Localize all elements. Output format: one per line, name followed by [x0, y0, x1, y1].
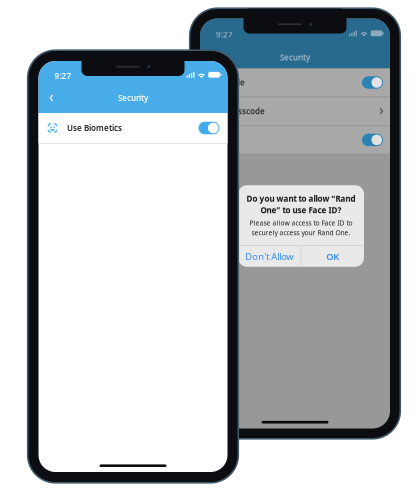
button[interactable]: Use Biometics — [38, 113, 227, 143]
staticText: Face ID — [208, 135, 237, 145]
button[interactable]: Don't Allow — [238, 246, 301, 267]
staticText: OK — [326, 250, 339, 262]
staticText: Use Biometics — [67, 123, 122, 133]
staticText: New Passcode — [208, 106, 265, 116]
staticText: Do you want to allow “Rand — [246, 193, 355, 204]
staticText: Security — [118, 93, 148, 103]
staticText: Security — [280, 52, 310, 63]
staticText: One” to use Face ID? — [260, 205, 341, 215]
staticText: Don't Allow — [245, 250, 293, 262]
staticText: securely access your Rand One. — [251, 228, 350, 237]
button[interactable]: OK — [301, 246, 364, 267]
staticText: 9:27 — [54, 71, 71, 81]
staticText: 9:27 — [216, 29, 233, 40]
staticText: Passcode — [208, 77, 245, 88]
button[interactable]: Back — [42, 88, 60, 108]
staticText: Please allow access to Face ID to — [249, 218, 352, 227]
